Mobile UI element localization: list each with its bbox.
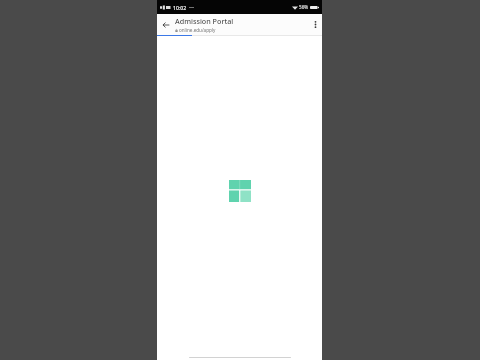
staticText: 10:02	[173, 4, 187, 11]
button[interactable]: More options	[308, 14, 322, 35]
button[interactable]: Admission Portal	[174, 16, 308, 33]
staticText: online.edu/apply	[179, 27, 216, 33]
staticText: 56%	[299, 4, 309, 10]
staticText: Admission Portal	[175, 16, 234, 26]
button[interactable]: Back	[157, 14, 174, 35]
